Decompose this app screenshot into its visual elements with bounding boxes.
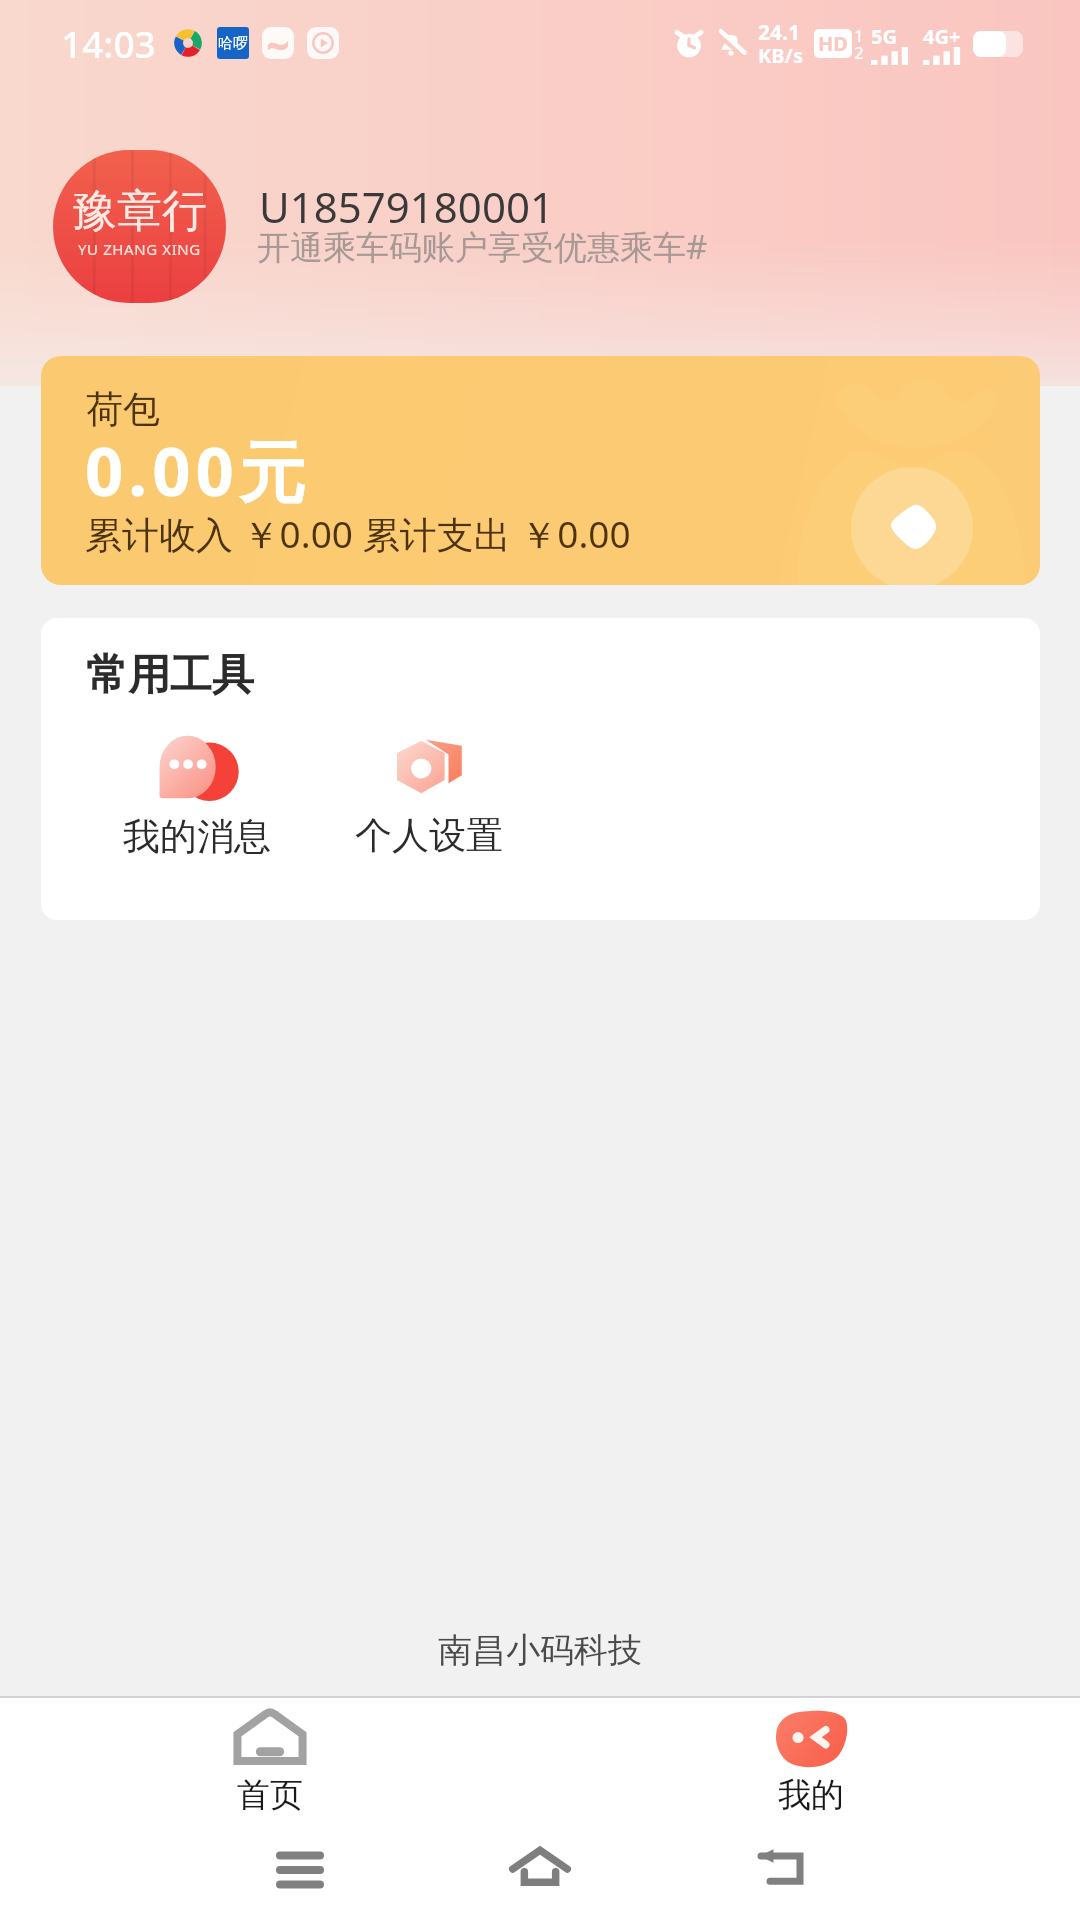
staticText: 我的消息 [123, 813, 271, 860]
button[interactable]: 荷包 [41, 356, 1040, 585]
staticText: 开通乘车码账户享受优惠乘车# [257, 224, 708, 269]
staticText: 24.1 [758, 18, 800, 47]
staticText: 南昌小码科技 [438, 1629, 642, 1672]
staticText: KB/s [758, 42, 803, 69]
button[interactable]: Recents [268, 1838, 332, 1902]
staticText: 哈啰 [218, 34, 248, 53]
staticText: HD [818, 30, 848, 57]
staticText: 1 [854, 24, 864, 47]
staticText: 2 [854, 41, 864, 64]
staticText: 个人设置 [355, 812, 503, 859]
staticText: 5G [871, 23, 897, 50]
staticText: 累计收入 ￥0.00 累计支出 ￥0.00 [85, 508, 631, 559]
staticText: 首页 [237, 1774, 303, 1816]
button[interactable]: Home [508, 1835, 572, 1899]
staticText: 14:03 [61, 18, 156, 68]
button[interactable]: Account U18579180001 [40, 140, 1040, 315]
button[interactable]: 我的消息 [112, 733, 282, 860]
staticText: 0.00元 [85, 424, 311, 516]
button[interactable]: Back [750, 1835, 814, 1899]
staticText: 4G+ [923, 23, 961, 50]
button[interactable]: 我的 [731, 1698, 891, 1816]
staticText: YU ZHANG XING [78, 239, 201, 259]
staticText: 常用工具 [86, 649, 254, 702]
staticText: 我的 [778, 1774, 844, 1816]
button[interactable]: 个人设置 [344, 733, 514, 859]
staticText: U18579180001 [259, 178, 554, 235]
staticText: 荷包 [86, 386, 160, 433]
staticText: 豫章行 [72, 183, 207, 240]
button[interactable]: 首页 [190, 1698, 350, 1816]
